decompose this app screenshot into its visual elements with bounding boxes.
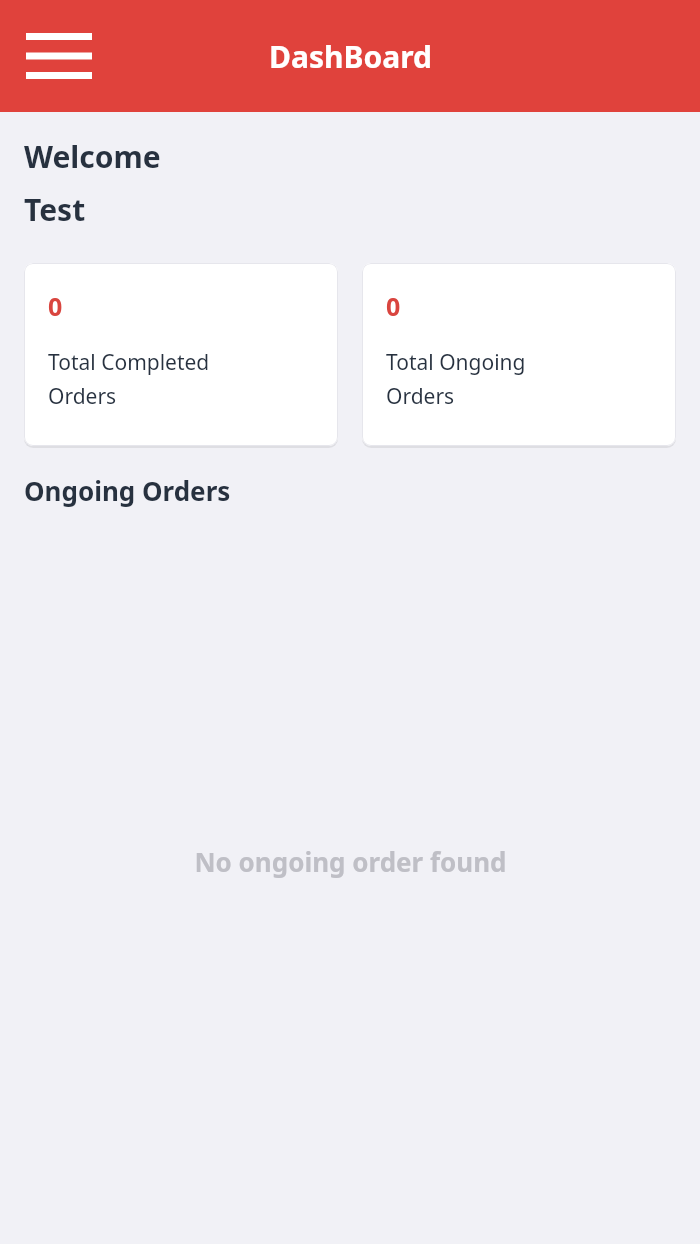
staticText: No ongoing order found [194,844,507,879]
staticText: 0 [48,289,63,323]
button[interactable]: 0 [362,263,676,446]
staticText: DashBoard [269,36,432,77]
button[interactable]: Open navigation menu [10,13,108,99]
staticText: Ongoing Orders [24,473,231,508]
staticText: Welcome [24,136,161,177]
staticText: Total Ongoing Orders [386,348,526,410]
staticText: Total Completed Orders [48,348,210,410]
staticText: Test [24,189,86,230]
button[interactable]: 0 [24,263,338,446]
staticText: 0 [386,289,401,323]
